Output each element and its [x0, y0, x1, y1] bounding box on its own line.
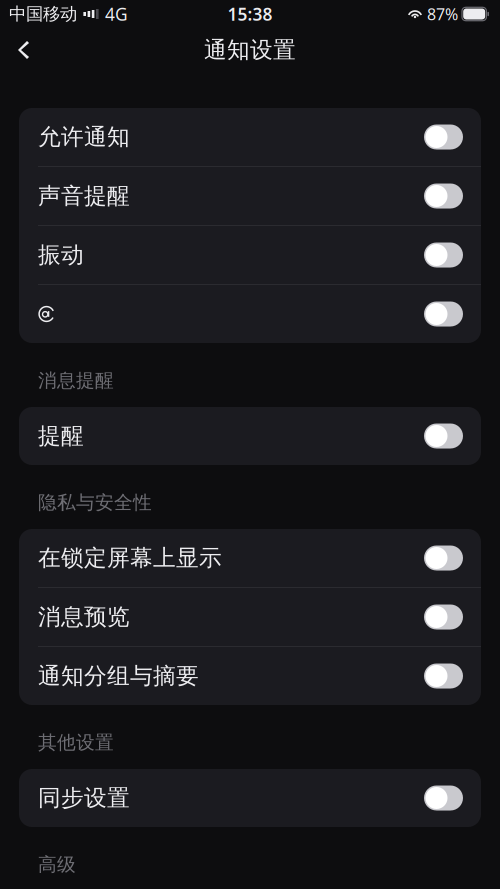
staticText: 87% — [427, 3, 458, 25]
staticText: 中国移动 — [9, 3, 77, 25]
staticText: 在锁定屏幕上显示 — [38, 544, 222, 572]
button[interactable]: Back — [0, 28, 52, 72]
staticText: 其他设置 — [38, 731, 114, 754]
staticText: 15:38 — [227, 2, 272, 25]
button[interactable]: 通知分组与摘要 — [19, 647, 481, 705]
staticText: 隐私与安全性 — [38, 491, 152, 514]
button[interactable]: 允许通知 — [19, 108, 481, 166]
button[interactable]: 提醒 — [19, 407, 481, 465]
button[interactable]: 同步设置 — [19, 769, 481, 827]
button[interactable]: 声音提醒 — [19, 167, 481, 225]
staticText: 允许通知 — [38, 123, 130, 151]
staticText: 高级 — [38, 853, 76, 876]
staticText: 提醒 — [38, 422, 84, 450]
staticText: 声音提醒 — [38, 182, 130, 210]
staticText: 通知设置 — [204, 36, 296, 64]
staticText: 4G — [105, 2, 128, 25]
staticText: 同步设置 — [38, 784, 130, 812]
button[interactable]: 在锁定屏幕上显示 — [19, 529, 481, 587]
button[interactable]: 振动 — [19, 226, 481, 284]
staticText: 消息提醒 — [38, 369, 114, 392]
staticText: 振动 — [38, 241, 84, 269]
button[interactable]: Mentions — [19, 285, 481, 343]
staticText: 通知分组与摘要 — [38, 662, 199, 690]
staticText: 消息预览 — [38, 603, 130, 631]
button[interactable]: 消息预览 — [19, 588, 481, 646]
